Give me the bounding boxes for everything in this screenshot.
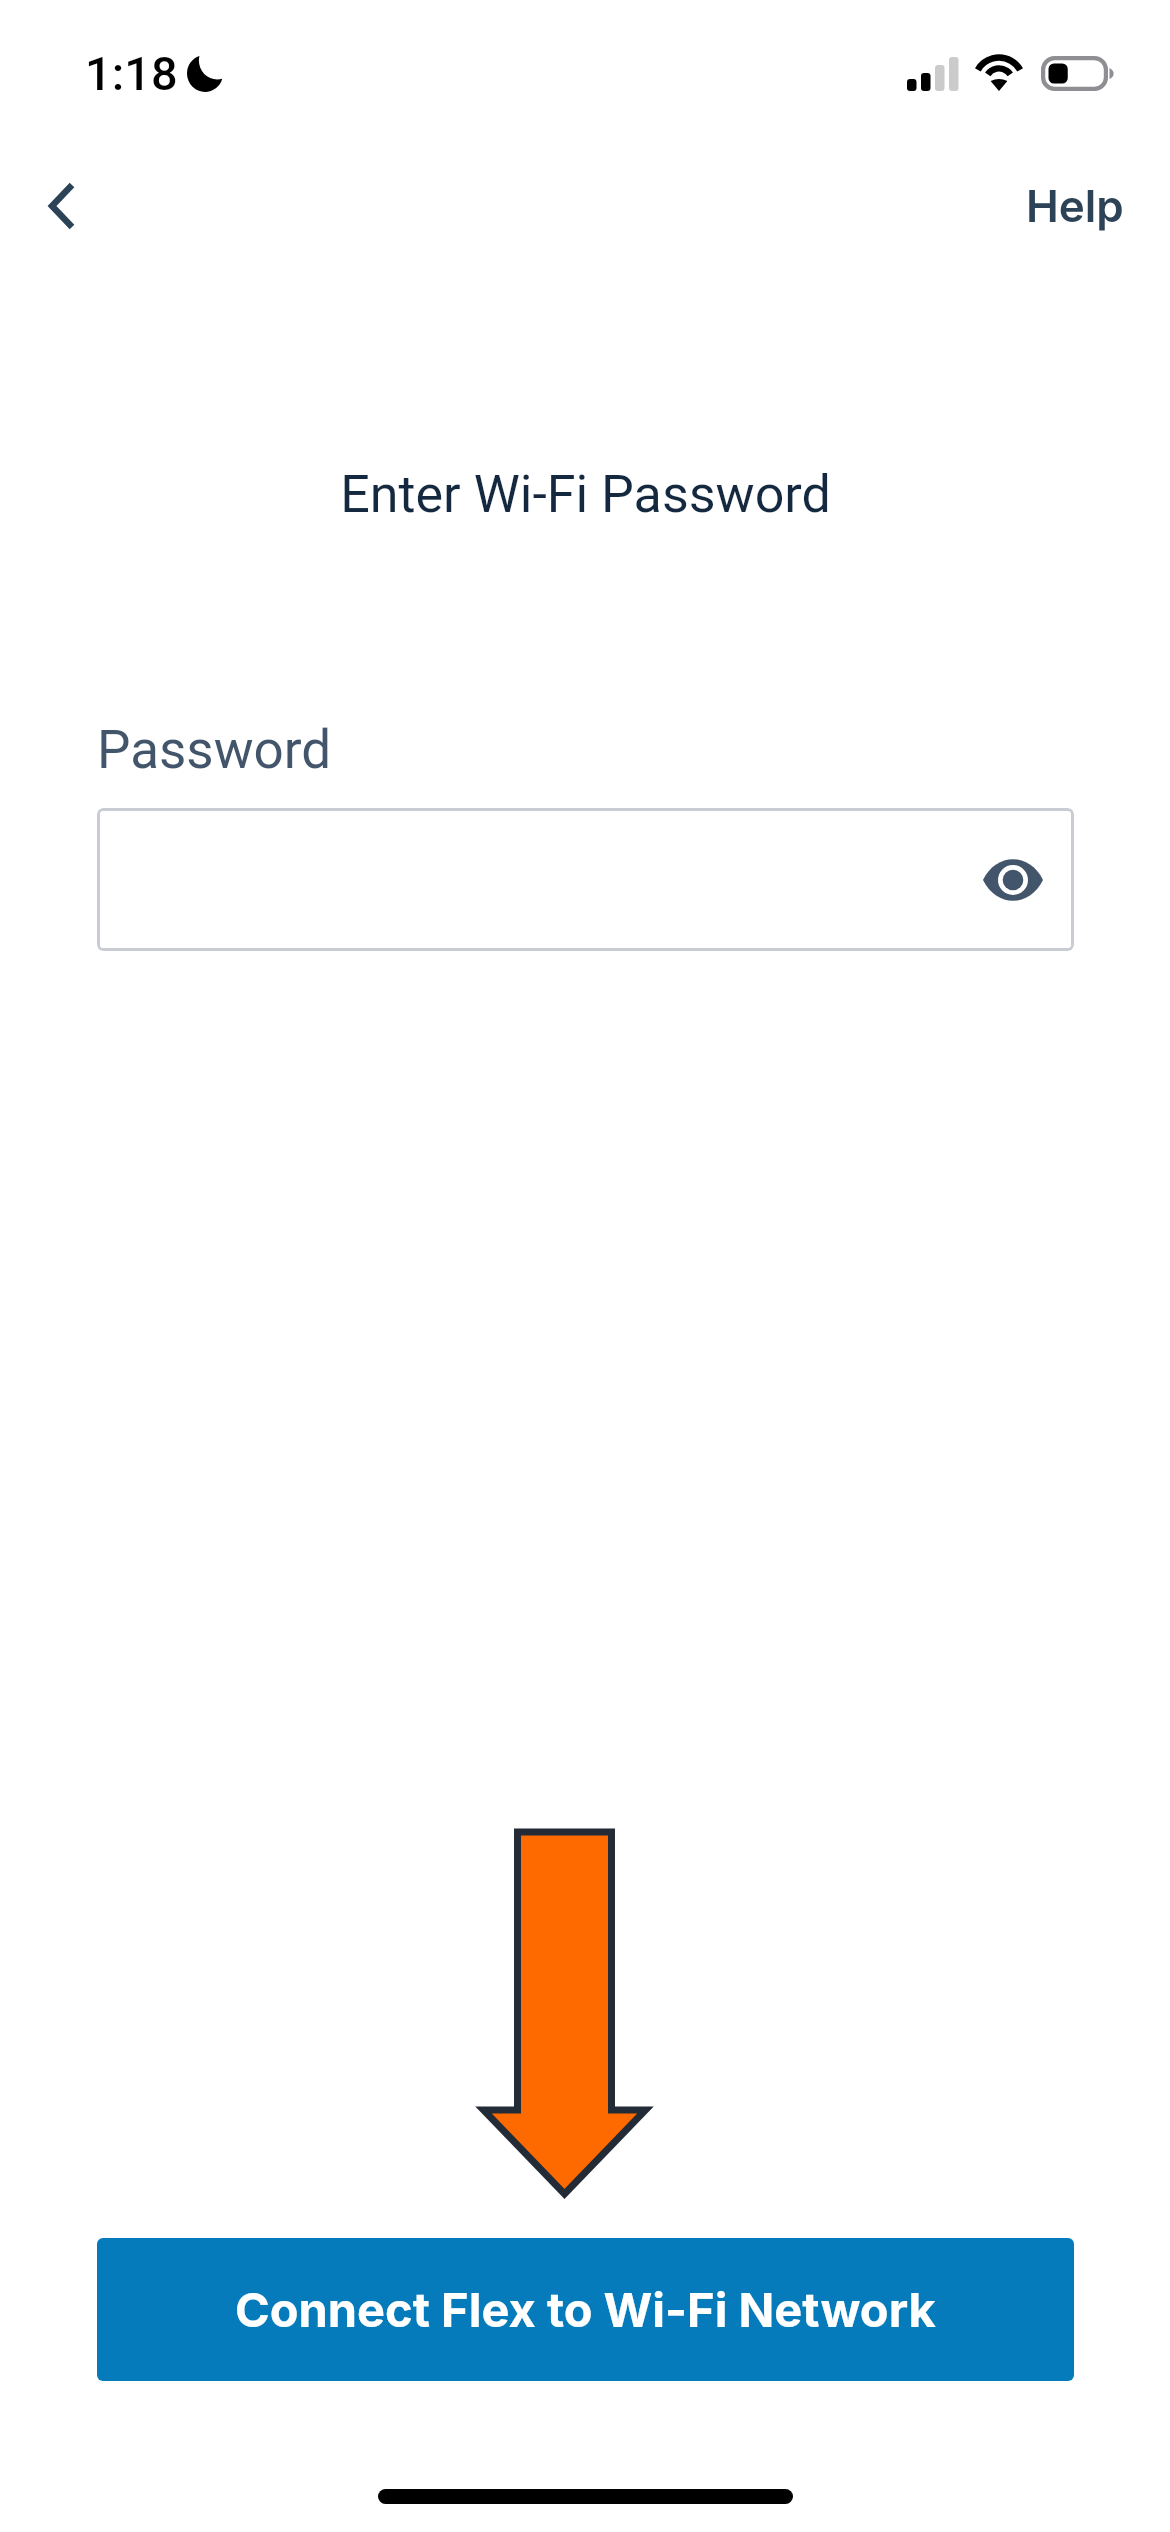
staticText: Password — [97, 719, 332, 781]
staticText: Enter Wi-Fi Password — [340, 464, 831, 525]
button[interactable]: Show password — [97, 808, 1074, 951]
button[interactable]: Show password — [964, 831, 1062, 929]
staticText: Connect Flex to Wi-Fi Network — [235, 2281, 936, 2338]
staticText: Help — [1026, 179, 1124, 232]
button[interactable]: Back — [4, 152, 114, 262]
staticText: 1:18 — [85, 46, 178, 101]
button[interactable]: Help — [1001, 152, 1149, 256]
button[interactable]: Connect Flex to Wi-Fi Network — [97, 2238, 1074, 2381]
